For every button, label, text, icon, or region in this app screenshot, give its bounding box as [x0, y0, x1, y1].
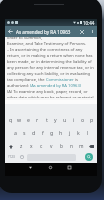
button[interactable]: u	[60, 113, 69, 126]
button[interactable]: p	[87, 113, 96, 126]
button[interactable]: Recent apps	[60, 163, 78, 172]
button[interactable]: f	[38, 126, 47, 139]
button[interactable]: w	[15, 113, 24, 126]
staticText: i	[73, 116, 75, 123]
staticText: c	[40, 143, 43, 150]
staticText: any person for any internal revenue tax,…	[7, 65, 94, 71]
staticText: (As amended by RA 10963)	[30, 83, 81, 89]
staticText: ?123	[8, 155, 15, 159]
button[interactable]: Home	[41, 163, 59, 172]
staticText: Examine, and Take Testimony of Persons.	[7, 41, 87, 47]
staticText: g	[50, 129, 54, 136]
staticText: s	[23, 129, 26, 136]
button[interactable]: i	[69, 113, 78, 126]
button[interactable]: l	[83, 126, 92, 139]
staticText: t	[46, 116, 48, 123]
staticText: w	[17, 116, 22, 123]
button[interactable]: a	[10, 126, 20, 139]
button[interactable]: e	[24, 113, 33, 126]
button[interactable]: h	[56, 126, 65, 139]
staticText: x	[30, 143, 33, 150]
staticText: (A) To examine any book, paper, record, …	[7, 89, 88, 95]
staticText: u	[63, 116, 67, 123]
button[interactable]: Close search	[76, 26, 88, 37]
staticText: r	[36, 116, 39, 123]
button[interactable]: d	[29, 126, 38, 139]
button[interactable]: g	[47, 126, 56, 139]
staticText: m	[79, 143, 84, 150]
staticText: 10:44	[83, 20, 95, 26]
button[interactable]: t	[42, 113, 51, 126]
button[interactable]: v	[46, 140, 56, 153]
button[interactable]: m	[76, 140, 86, 153]
staticText: As amended by RA 10963	[16, 29, 76, 35]
staticText: l	[87, 129, 89, 136]
staticText: other data which may be relevant or mate…	[7, 95, 94, 98]
staticText: Commissioner	[46, 77, 74, 83]
staticText: f	[42, 129, 44, 136]
staticText: n	[70, 143, 73, 150]
staticText: b	[60, 143, 63, 150]
staticText: e	[27, 116, 30, 123]
button[interactable]: Shift	[5, 140, 16, 153]
staticText: o	[81, 116, 85, 123]
staticText: – In ascertaining the correctness of any	[7, 47, 83, 53]
staticText: collecting any such liability, or in eva…	[7, 71, 91, 77]
button[interactable]: y	[51, 113, 60, 126]
button[interactable]: ?123	[5, 151, 18, 163]
staticText: a	[14, 129, 17, 136]
button[interactable]: c	[36, 140, 46, 153]
button[interactable]: Hide keyboard	[21, 163, 39, 172]
button[interactable]: r	[33, 113, 42, 126]
button[interactable]: o	[78, 113, 87, 126]
staticText: p	[90, 116, 94, 123]
staticText: d	[32, 129, 36, 136]
button[interactable]: More options	[88, 26, 97, 37]
staticText: tax compliance, the	[7, 77, 46, 83]
button[interactable]: b	[56, 140, 66, 153]
button[interactable]: s	[20, 126, 29, 139]
staticText: return, or in making a return when none …	[7, 53, 93, 59]
button[interactable]: x	[26, 140, 36, 153]
staticText: k	[77, 129, 80, 136]
staticText: z	[20, 143, 23, 150]
staticText: been made, or in determining the liabili…	[7, 59, 92, 65]
staticText: y	[54, 116, 57, 123]
button[interactable]: Backspace	[86, 140, 97, 153]
staticText: v	[50, 143, 53, 150]
staticText: authorized:	[7, 83, 30, 89]
button[interactable]: j	[65, 126, 74, 139]
button[interactable]: Emoji	[18, 151, 26, 163]
button[interactable]: Search	[81, 151, 97, 163]
staticText: h	[59, 129, 63, 136]
button[interactable]: z	[16, 140, 26, 153]
staticText: order to Summon,	[7, 37, 43, 41]
staticText: q	[9, 116, 13, 123]
staticText: j	[69, 129, 71, 136]
button[interactable]: q	[6, 113, 15, 126]
button[interactable]: n	[66, 140, 76, 153]
button[interactable]: Back	[5, 26, 16, 37]
button[interactable]: k	[74, 126, 83, 139]
staticText: is	[74, 77, 79, 83]
